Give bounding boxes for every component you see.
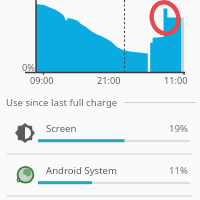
staticText: 21:00 <box>97 74 121 87</box>
staticText: 19% <box>169 122 188 135</box>
staticText: 11:00 <box>164 74 188 87</box>
staticText: Screen <box>46 122 77 135</box>
button[interactable]: Screen <box>0 113 200 153</box>
button[interactable]: Android System <box>0 155 200 195</box>
staticText: 11% <box>169 164 188 177</box>
staticText: 0% <box>22 61 35 74</box>
staticText: 09:00 <box>30 74 54 87</box>
staticText: Use since last full charge <box>6 96 118 109</box>
staticText: Android System <box>46 164 118 177</box>
